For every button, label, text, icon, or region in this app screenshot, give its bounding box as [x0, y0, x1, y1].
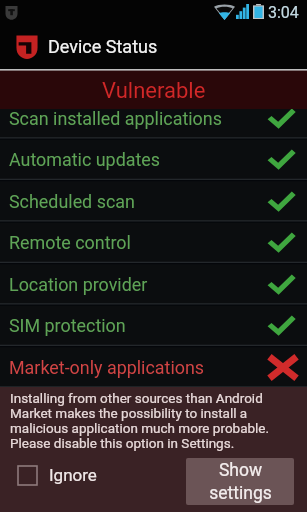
button[interactable]: Scheduled scan: [0, 180, 307, 222]
staticText: Device Status: [48, 36, 158, 57]
other: Notification: [4, 5, 19, 20]
staticText: Remote control: [9, 232, 267, 253]
button[interactable]: Location provider: [0, 263, 307, 305]
staticText: Vulnerable: [102, 78, 206, 104]
button[interactable]: Scan installed applications: [0, 97, 307, 139]
staticText: Market-only applications: [9, 357, 266, 378]
staticText: Installing from other sources than Andro…: [10, 390, 288, 451]
button[interactable]: Automatic updates: [0, 138, 307, 180]
staticText: Scheduled scan: [9, 191, 267, 212]
staticText: Automatic updates: [9, 149, 267, 170]
button[interactable]: Ignore: [18, 451, 97, 499]
button[interactable]: App icon: [0, 24, 307, 69]
button[interactable]: Show settings: [186, 458, 294, 505]
other: App icon: [16, 35, 38, 59]
staticText: 3:04: [268, 3, 299, 22]
staticText: Location provider: [9, 274, 267, 295]
staticText: SIM protection: [9, 315, 267, 336]
staticText: Ignore: [49, 465, 97, 485]
button[interactable]: Remote control: [0, 221, 307, 263]
button[interactable]: SIM protection: [0, 304, 307, 346]
staticText: Show settings: [209, 460, 272, 503]
staticText: Scan installed applications: [9, 108, 267, 129]
button[interactable]: Market-only applications: [0, 346, 307, 388]
